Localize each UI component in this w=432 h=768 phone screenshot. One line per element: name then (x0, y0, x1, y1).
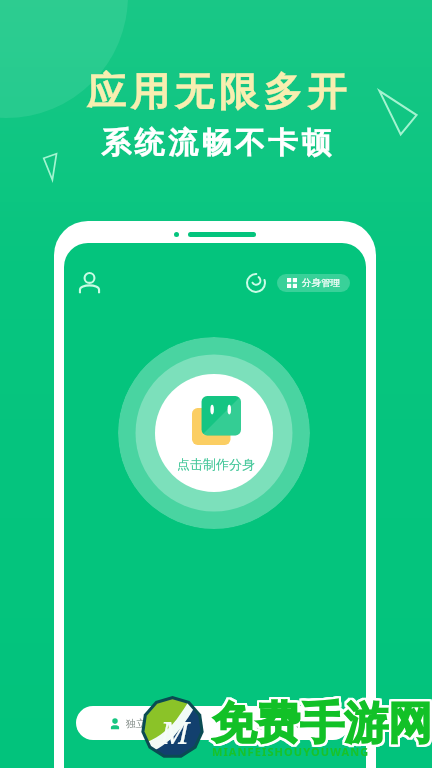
button[interactable]: 独立空间 (76, 706, 350, 740)
staticText: 免费手游网 (212, 696, 432, 751)
button[interactable]: Create clone (118, 337, 310, 529)
staticText: 免费手游网 (211, 697, 431, 752)
staticText: 无病毒成分 (272, 717, 322, 730)
staticText: 免费手游网 (212, 694, 432, 749)
staticText: 分身管理 (302, 277, 340, 289)
staticText: 免费手游网 (213, 698, 432, 753)
staticText: 免费手游网 (214, 694, 432, 749)
staticText: 免费手游网 (213, 694, 432, 749)
staticText: 免费手游网 (213, 697, 432, 752)
staticText: 免费手游网 (213, 695, 432, 750)
staticText: 应用无限多开 (86, 67, 352, 116)
staticText: 免费手游网 (212, 695, 432, 750)
staticText: 点击制作分身 (177, 456, 255, 472)
staticText: 免费手游网 (213, 696, 432, 751)
staticText: 系统流畅不卡顿 (101, 124, 335, 162)
staticText: 免费手游网 (210, 697, 430, 752)
button[interactable]: Refresh (243, 270, 269, 296)
button[interactable]: 分身管理 (277, 274, 350, 292)
staticText: 免费手游网 (214, 695, 432, 750)
staticText: 独立空间 (126, 717, 166, 730)
staticText: 免费手游网 (211, 698, 431, 753)
staticText: 免费手游网 (210, 696, 430, 751)
staticText: 免费手游网 (210, 694, 430, 749)
staticText: 免费手游网 (214, 697, 432, 752)
staticText: MIANFEISHOUYOUWANG (212, 744, 370, 759)
staticText: 免费手游网 (210, 698, 430, 753)
staticText: M (160, 711, 190, 753)
staticText: 免费手游网 (211, 696, 431, 751)
staticText: 免费手游网 (211, 694, 431, 749)
staticText: 免费手游网 (210, 695, 430, 750)
staticText: 免费手游网 (212, 698, 432, 753)
staticText: 免费手游网 (211, 695, 431, 750)
button[interactable]: Profile (72, 266, 106, 300)
staticText: 免费手游网 (214, 696, 432, 751)
staticText: 免费手游网 (214, 698, 432, 753)
staticText: 免费手游网 (212, 697, 432, 752)
